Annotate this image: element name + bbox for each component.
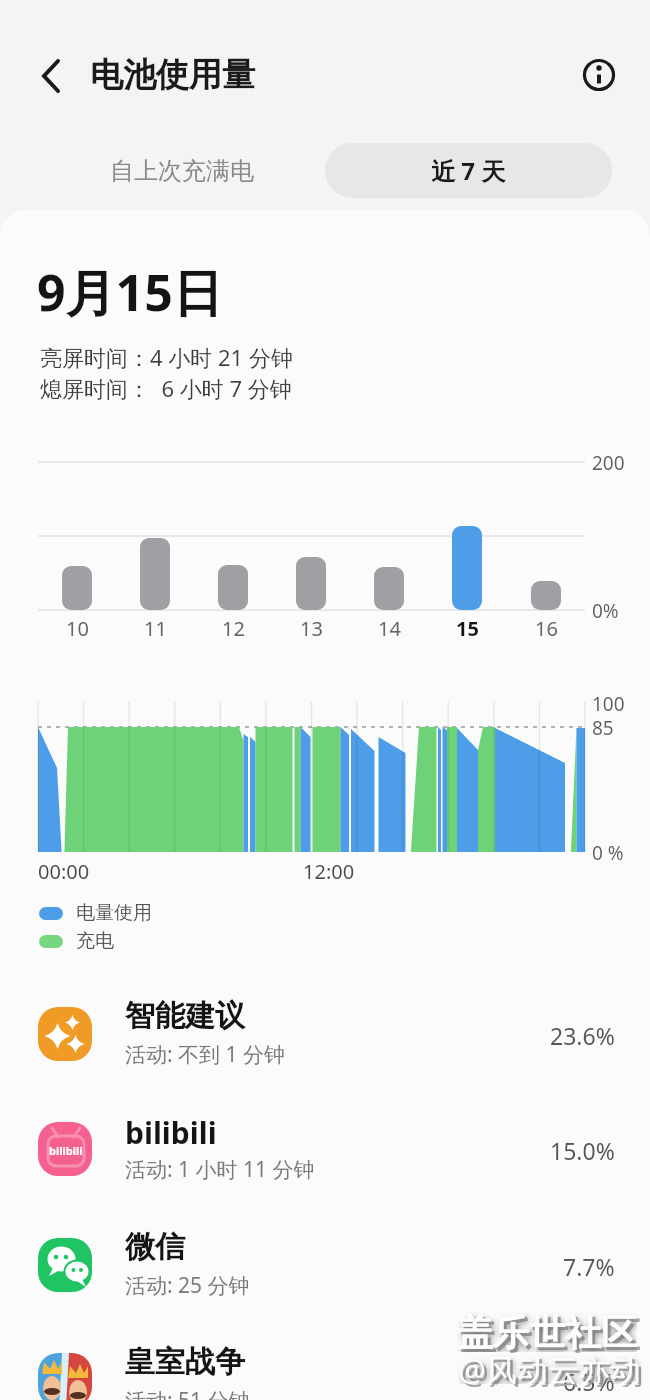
staticText: bilibili [49,1143,83,1158]
staticText: 15.0% [550,1135,615,1163]
staticText: 熄屏时间： 6 小时 7 分钟 [40,373,292,403]
staticText: 10 [66,615,89,641]
staticText: 12 [222,615,245,641]
button[interactable] [30,48,74,104]
button[interactable] [25,995,625,1099]
staticText: 亮屏时间：4 小时 21 分钟 [40,342,293,372]
staticText: 00:00 [38,858,90,885]
staticText: 皇室战争 [125,1343,245,1381]
button[interactable] [25,1341,625,1400]
staticText: 11 [144,615,167,641]
button[interactable] [25,1226,625,1330]
staticText: 14 [378,615,401,641]
staticText: 盖乐世社区 [460,1313,640,1355]
staticText: 微信 [125,1228,185,1266]
staticText: 活动: 1 小时 11 分钟 [125,1155,315,1184]
button[interactable]: 近 7 天 [325,143,612,198]
staticText: 12:00 [303,858,355,885]
staticText: 盖乐世社区 [457,1310,637,1352]
staticText: 0 % [592,840,624,866]
staticText: 9月15日 [37,258,223,326]
staticText: 电池使用量 [90,54,255,96]
button[interactable]: 自上次充满电 [38,143,325,198]
staticText: 自上次充满电 [110,156,254,186]
staticText: 电量使用 [76,901,152,925]
staticText: 活动: 51 分钟 [125,1386,250,1400]
button[interactable] [25,1110,625,1214]
staticText: 15 [456,615,479,641]
staticText: @风动云亦动 [461,1351,644,1387]
staticText: 充电 [76,929,114,953]
staticText: bilibili [125,1112,217,1153]
staticText: @风动云亦动 [458,1348,641,1384]
staticText: 13 [300,615,323,641]
staticText: 16 [535,615,558,641]
staticText: 7.7% [563,1251,615,1279]
staticText: 活动: 25 分钟 [125,1271,250,1300]
staticText: 0% [592,598,619,624]
staticText: 85 [592,715,614,741]
staticText: 近 7 天 [431,154,506,187]
staticText: 100 [592,691,625,717]
staticText: 活动: 不到 1 分钟 [125,1040,286,1069]
staticText: 智能建议 [125,997,245,1035]
button[interactable] [577,53,621,97]
staticText: 6.5% [563,1366,615,1394]
staticText: 200 [592,450,625,476]
staticText: 23.6% [550,1020,615,1048]
